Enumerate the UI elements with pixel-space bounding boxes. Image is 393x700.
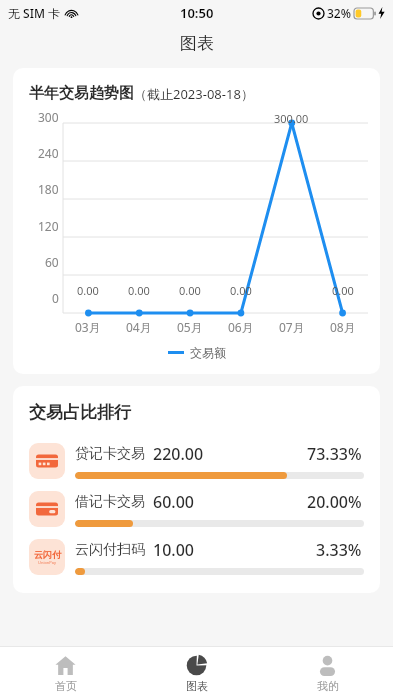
staticText: 图表 bbox=[186, 679, 208, 693]
staticText: 交易额 bbox=[190, 345, 226, 360]
staticText: 220.00 bbox=[153, 443, 204, 465]
staticText: 10:50 bbox=[180, 4, 214, 22]
staticText: 32% bbox=[327, 5, 351, 21]
staticText: 首页 bbox=[55, 679, 77, 693]
staticText: 0.00 bbox=[179, 283, 201, 298]
staticText: 120 bbox=[38, 218, 59, 234]
staticText: 半年交易趋势图 bbox=[29, 84, 134, 103]
button[interactable]: 首页 bbox=[0, 647, 131, 700]
button[interactable]: 云闪付 bbox=[13, 533, 380, 581]
staticText: 0.00 bbox=[128, 283, 150, 298]
staticText: 贷记卡交易 bbox=[75, 445, 145, 463]
staticText: 05月 bbox=[177, 319, 203, 335]
button[interactable]: 借记卡交易 bbox=[13, 485, 380, 533]
staticText: 06月 bbox=[228, 319, 254, 335]
staticText: 60 bbox=[45, 254, 59, 270]
staticText: UnionPay bbox=[38, 560, 57, 565]
staticText: 我的 bbox=[317, 679, 339, 693]
staticText: 云闪付 bbox=[34, 549, 61, 560]
staticText: 04月 bbox=[126, 319, 152, 335]
button[interactable]: 图表 bbox=[131, 647, 262, 700]
staticText: 无 SIM 卡 bbox=[8, 5, 61, 21]
staticText: 180 bbox=[38, 181, 59, 197]
staticText: 0.00 bbox=[230, 283, 252, 298]
staticText: 60.00 bbox=[153, 491, 194, 513]
staticText: 08月 bbox=[330, 319, 356, 335]
staticText: 云闪付扫码 bbox=[75, 541, 145, 559]
staticText: 300 bbox=[38, 109, 59, 125]
staticText: 图表 bbox=[180, 33, 214, 54]
button[interactable]: 我的 bbox=[262, 647, 393, 700]
staticText: 03月 bbox=[75, 319, 101, 335]
staticText: 借记卡交易 bbox=[75, 493, 145, 511]
staticText: 3.33% bbox=[316, 539, 362, 561]
staticText: 300.00 bbox=[274, 111, 309, 126]
staticText: 0.00 bbox=[332, 283, 354, 298]
staticText: 0 bbox=[52, 290, 59, 306]
button[interactable]: 贷记卡交易 bbox=[13, 437, 380, 485]
staticText: 0.00 bbox=[77, 283, 99, 298]
staticText: 交易占比排行 bbox=[29, 402, 131, 423]
staticText: （截止2023-08-18） bbox=[134, 85, 254, 103]
staticText: 240 bbox=[38, 145, 59, 161]
staticText: 10.00 bbox=[153, 539, 194, 561]
staticText: 20.00% bbox=[307, 491, 362, 513]
staticText: 07月 bbox=[279, 319, 305, 335]
staticText: 73.33% bbox=[307, 443, 362, 465]
